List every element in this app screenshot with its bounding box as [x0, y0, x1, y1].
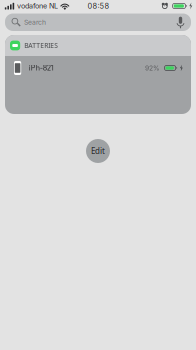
- staticText: BATTERIES: [24, 41, 58, 50]
- staticText: iPh-821: [29, 64, 54, 72]
- staticText: vodafone NL: [17, 2, 58, 10]
- staticText: 92%: [145, 64, 160, 72]
- staticText: 08:58: [87, 1, 109, 10]
- button[interactable]: Edit: [86, 139, 110, 163]
- staticText: Edit: [91, 146, 105, 156]
- staticText: Search: [24, 18, 46, 26]
